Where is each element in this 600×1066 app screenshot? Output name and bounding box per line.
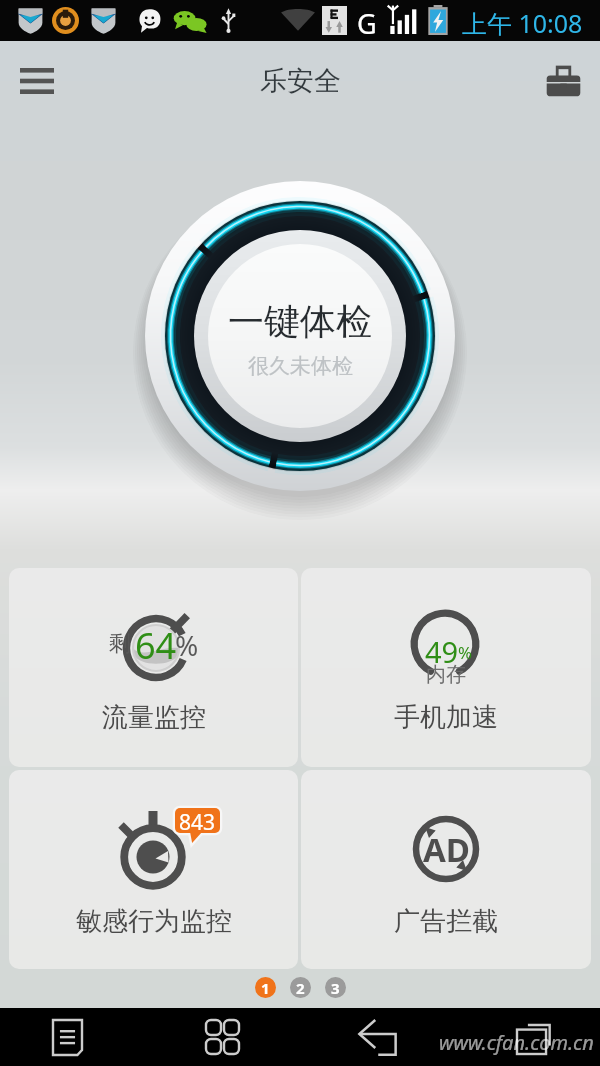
staticText: 流量监控 bbox=[102, 701, 206, 734]
button[interactable]: Menu bbox=[0, 41, 74, 120]
button[interactable]: Recents bbox=[486, 1008, 580, 1066]
staticText: 843 bbox=[179, 808, 216, 837]
staticText: 手机加速 bbox=[394, 701, 498, 734]
staticText: 3 bbox=[331, 978, 340, 998]
staticText: www.cfan.com.cn bbox=[439, 1029, 594, 1056]
staticText: % bbox=[175, 626, 199, 664]
button[interactable]: 剩 bbox=[9, 568, 298, 767]
button[interactable]: Back bbox=[330, 1008, 424, 1066]
button[interactable]: One key check bbox=[130, 166, 470, 506]
button[interactable]: Apps bbox=[175, 1008, 269, 1066]
staticText: 敏感行为监控 bbox=[76, 905, 232, 938]
staticText: 很久未体检 bbox=[248, 353, 353, 379]
staticText: 64 bbox=[135, 621, 177, 670]
button[interactable]: 843 bbox=[9, 770, 298, 969]
button[interactable]: Toolbox bbox=[526, 41, 600, 120]
staticText: 剩 bbox=[109, 630, 131, 658]
button[interactable]: 49 bbox=[301, 568, 591, 767]
button[interactable]: 2 bbox=[290, 977, 311, 998]
button[interactable]: AD bbox=[301, 770, 591, 969]
staticText: 1 bbox=[261, 978, 270, 998]
button[interactable]: Menu bbox=[20, 1008, 114, 1066]
staticText: 广告拦截 bbox=[394, 905, 498, 938]
staticText: % bbox=[458, 641, 473, 664]
staticText: G bbox=[357, 5, 377, 42]
button[interactable]: 3 bbox=[325, 977, 346, 998]
button[interactable]: 1 bbox=[255, 977, 276, 998]
staticText: 一键体检 bbox=[228, 299, 372, 344]
staticText: 上午 10:08 bbox=[462, 6, 583, 40]
staticText: 内存 bbox=[426, 662, 466, 687]
staticText: 49 bbox=[425, 632, 459, 671]
staticText: 2 bbox=[296, 978, 305, 998]
staticText: AD bbox=[423, 827, 470, 872]
staticText: 乐安全 bbox=[260, 64, 341, 98]
